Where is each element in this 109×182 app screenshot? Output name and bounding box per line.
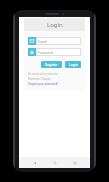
button[interactable]: Password bbox=[28, 48, 81, 56]
button[interactable]: Register bbox=[41, 61, 62, 68]
staticText: Login bbox=[47, 21, 63, 29]
staticText: Register bbox=[45, 63, 58, 67]
staticText: Login bbox=[69, 63, 78, 67]
button[interactable]: Recent apps bbox=[70, 158, 79, 167]
button[interactable]: Back bbox=[30, 158, 39, 167]
other: Password bbox=[28, 48, 36, 56]
other: Email bbox=[28, 37, 36, 45]
staticText: Forgot your password? bbox=[28, 82, 59, 86]
staticText: Facebook / Google bbox=[28, 77, 51, 81]
staticText: Password bbox=[38, 50, 54, 55]
button[interactable]: Email bbox=[28, 37, 81, 45]
staticText: Or create an account via bbox=[28, 72, 58, 76]
button[interactable]: Forgot your password? bbox=[28, 82, 59, 86]
button[interactable]: Home bbox=[50, 158, 59, 167]
button[interactable]: Login bbox=[65, 61, 81, 68]
staticText: Email bbox=[38, 39, 47, 44]
